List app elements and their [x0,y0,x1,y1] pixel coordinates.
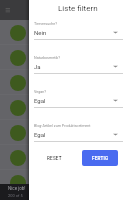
button[interactable] [0,20,127,45]
staticText: RESET [47,156,62,161]
staticText: Vegan? [34,90,47,94]
staticText: 200 of 5 [8,193,23,198]
button[interactable] [0,170,127,195]
button[interactable]: Vegan? [34,90,123,108]
button[interactable]: Tierversuche? [34,22,123,40]
button[interactable]: Blog-Artikel zum Produktsortiment [34,124,123,142]
button[interactable]: Naturkosmetik? [34,56,123,74]
button[interactable]: Open navigation menu [4,5,12,14]
staticText: Nein [34,29,47,36]
staticText: Egal [34,131,46,138]
button[interactable]: RESET [42,150,67,166]
button[interactable] [0,120,127,145]
staticText: Nice job! [8,186,26,191]
button[interactable]: FERTIG [82,150,118,166]
staticText: Ja [34,63,41,70]
staticText: FERTIG [92,156,109,161]
button[interactable] [0,145,127,170]
staticText: Egal [34,97,46,104]
button[interactable] [0,45,127,70]
button[interactable] [0,95,127,120]
staticText: Blog-Artikel zum Produktsortiment [34,124,91,128]
staticText: Tierversuche? [34,22,57,26]
staticText: Naturkosmetik? [34,56,60,60]
button[interactable]: Nice job! [0,184,127,200]
button[interactable] [0,70,127,95]
staticText: Liste filtern [58,4,98,13]
